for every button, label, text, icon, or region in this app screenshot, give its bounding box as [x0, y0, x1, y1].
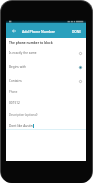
- staticText: Phone: [9, 90, 18, 94]
- staticText: 001512: [9, 101, 20, 105]
- staticText: Add Phone Number: [22, 29, 56, 34]
- staticText: Begins with: [9, 65, 26, 69]
- button[interactable]: Contains: [6, 74, 86, 88]
- button[interactable]: DONE: [68, 23, 86, 38]
- staticText: DONE: [72, 30, 82, 34]
- staticText: Is exactly the same: [9, 51, 37, 55]
- button[interactable]: Is exactly the same: [6, 46, 86, 60]
- staticText: Contains: [9, 79, 22, 83]
- button[interactable]: Begins with: [6, 60, 86, 74]
- staticText: The phone number to block: [9, 41, 53, 45]
- button[interactable]: Navigate up: [6, 23, 21, 38]
- staticText: Dont like Austin: [9, 124, 33, 128]
- staticText: Description (optional): [9, 113, 38, 117]
